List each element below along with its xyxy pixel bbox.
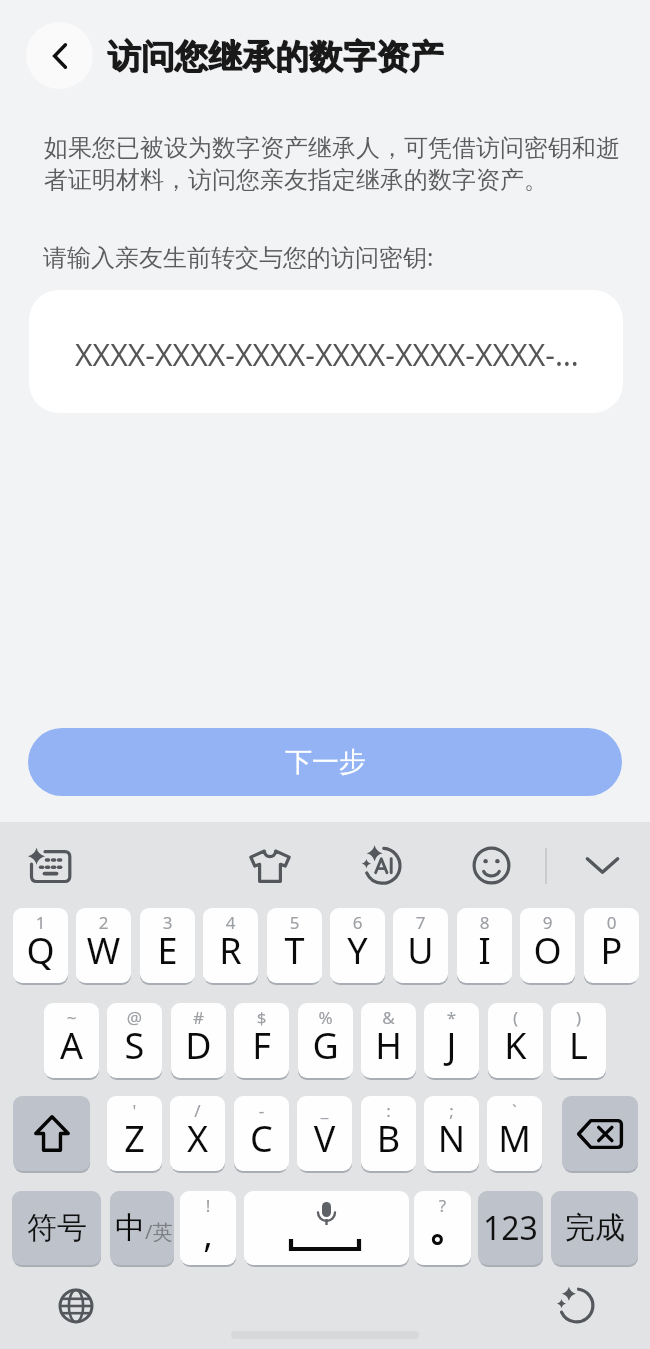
button[interactable]: *: [424, 1003, 479, 1078]
staticText: 完成: [565, 1209, 625, 1247]
staticText: 123: [483, 1206, 538, 1250]
button[interactable]: Shift: [13, 1096, 90, 1171]
button[interactable]: @: [107, 1003, 162, 1078]
button[interactable]: 6: [330, 908, 385, 983]
staticText: 7: [393, 911, 448, 934]
staticText: *: [424, 1006, 479, 1029]
button[interactable]: %: [298, 1003, 353, 1078]
staticText: 4: [203, 911, 258, 934]
staticText: #: [171, 1006, 226, 1029]
button[interactable]: 4: [203, 908, 258, 983]
button[interactable]: AI suggestions: [545, 1274, 607, 1336]
button[interactable]: Emoji: [461, 835, 522, 896]
staticText: _: [297, 1099, 352, 1122]
staticText: 1: [13, 911, 68, 934]
staticText: G: [298, 1021, 353, 1070]
staticText: 9: [520, 911, 575, 934]
staticText: 符号: [27, 1209, 87, 1247]
button[interactable]: #: [171, 1003, 226, 1078]
staticText: 访问您继承的数字资产: [108, 37, 444, 79]
button[interactable]: &: [361, 1003, 416, 1078]
staticText: H: [361, 1021, 416, 1070]
staticText: -: [234, 1099, 289, 1122]
staticText: A: [44, 1021, 99, 1070]
button[interactable]: Stickers: [238, 837, 302, 895]
staticText: ;: [424, 1099, 479, 1122]
button[interactable]: 1: [13, 908, 68, 983]
staticText: 如果您已被设为数字资产继承人，可凭借访问密钥和逝者证明材料，访问您亲友指定继承的…: [44, 133, 622, 195]
staticText: :: [361, 1099, 416, 1122]
button[interactable]: Hide keyboard: [574, 843, 631, 888]
staticText: Y: [330, 926, 385, 975]
staticText: 请输入亲友生前转交与您的访问密钥:: [43, 240, 434, 273]
staticText: W: [76, 926, 131, 975]
button[interactable]: _: [297, 1096, 352, 1171]
button[interactable]: (: [488, 1003, 543, 1078]
staticText: !: [180, 1194, 236, 1217]
button[interactable]: ): [551, 1003, 606, 1078]
staticText: C: [234, 1114, 289, 1163]
staticText: S: [107, 1021, 162, 1070]
button[interactable]: -: [234, 1096, 289, 1171]
staticText: 2: [76, 911, 131, 934]
staticText: X: [170, 1114, 225, 1163]
button[interactable]: 9: [520, 908, 575, 983]
button[interactable]: ': [107, 1096, 162, 1171]
staticText: O: [520, 926, 575, 975]
staticText: ?: [414, 1194, 471, 1217]
button[interactable]: 2: [76, 908, 131, 983]
button[interactable]: 下一步: [28, 728, 622, 796]
staticText: L: [551, 1021, 606, 1070]
button[interactable]: Space: [244, 1191, 409, 1265]
staticText: B: [361, 1114, 416, 1163]
button[interactable]: Backspace: [562, 1096, 638, 1171]
staticText: Z: [107, 1114, 162, 1163]
staticText: (: [488, 1006, 543, 1029]
button[interactable]: 123: [478, 1191, 543, 1265]
button[interactable]: AI assist: [350, 833, 414, 897]
staticText: R: [203, 926, 258, 975]
button[interactable]: ;: [424, 1096, 479, 1171]
staticText: 中: [115, 1209, 145, 1247]
button[interactable]: `: [487, 1096, 542, 1171]
button[interactable]: 3: [140, 908, 195, 983]
staticText: ): [551, 1006, 606, 1029]
staticText: 6: [330, 911, 385, 934]
button[interactable]: 完成: [551, 1191, 638, 1265]
button[interactable]: 5: [267, 908, 322, 983]
staticText: 0: [584, 911, 639, 934]
button[interactable]: 符号: [12, 1191, 101, 1265]
staticText: /英: [145, 1218, 173, 1245]
staticText: D: [171, 1021, 226, 1070]
button[interactable]: 8: [457, 908, 512, 983]
staticText: U: [393, 926, 448, 975]
staticText: J: [424, 1021, 479, 1070]
button[interactable]: Period: [414, 1191, 471, 1265]
button[interactable]: 0: [584, 908, 639, 983]
staticText: ~: [44, 1006, 99, 1029]
button[interactable]: 中: [110, 1191, 174, 1265]
staticText: I: [457, 926, 512, 975]
button[interactable]: :: [361, 1096, 416, 1171]
staticText: E: [140, 926, 195, 975]
staticText: 8: [457, 911, 512, 934]
button[interactable]: AI keyboard: [18, 837, 82, 895]
staticText: Q: [13, 926, 68, 975]
staticText: N: [424, 1114, 479, 1163]
button[interactable]: 7: [393, 908, 448, 983]
button[interactable]: XXXX-XXXX-XXXX-XXXX-XXXX-XXXX-…: [29, 290, 623, 413]
staticText: %: [298, 1006, 353, 1029]
staticText: `: [487, 1099, 542, 1122]
staticText: T: [267, 926, 322, 975]
button[interactable]: ~: [44, 1003, 99, 1078]
staticText: /: [170, 1099, 225, 1122]
button[interactable]: Change language: [47, 1277, 105, 1335]
button[interactable]: /: [170, 1096, 225, 1171]
staticText: V: [297, 1114, 352, 1163]
staticText: ': [107, 1099, 162, 1122]
button[interactable]: !: [180, 1191, 236, 1265]
staticText: 3: [140, 911, 195, 934]
staticText: &: [361, 1006, 416, 1029]
button[interactable]: Back: [26, 22, 93, 89]
button[interactable]: $: [234, 1003, 289, 1078]
